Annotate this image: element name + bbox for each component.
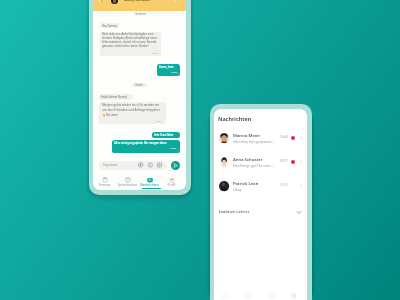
button[interactable]: SK [161,174,184,189]
button[interactable]: Inaktive Lehrer [214,204,307,220]
staticText: Gerne, kein [159,65,179,69]
staticText: Hallo kleiner Bonny! [101,95,132,99]
button[interactable]: Patrick Leon [214,175,307,198]
staticText: 21:32 [162,71,177,74]
button[interactable]: Marina Meier [214,127,307,150]
button[interactable]: Bonny Schneider [111,0,166,5]
staticText: Sag etwas [103,163,133,167]
staticText: Heute [132,83,146,87]
staticText: 09:17 [280,159,292,163]
staticText: 10:44 [280,135,292,139]
staticText: Anna Schuster [233,157,283,163]
staticText: Marina Meier [233,133,283,139]
staticText: 21:26 [143,52,158,55]
staticText: Sehr Dank Meer [154,133,179,137]
staticText: SK [166,178,178,181]
staticText: Das klingt gut! So moc... [233,163,281,168]
staticText: Alles wird gut geplant. Bis morgen dann [114,141,178,145]
staticText: Bonny Schneider [124,0,179,2]
staticText: 21:50 [161,147,176,150]
staticText: Termine [93,183,116,187]
staticText: Okay [233,187,281,192]
button[interactable]: Termine [94,174,117,189]
button[interactable]: More options [173,0,179,3]
button[interactable]: Back [99,0,105,3]
button[interactable]: Anna Schuster [214,151,307,174]
staticText: Hey Tommy [102,24,119,28]
staticText: Morgen gehts wieder los 😊 Es werden wir … [102,103,164,117]
button[interactable]: Send [171,161,180,170]
staticText: 10:24 [147,120,162,123]
button[interactable]: Sprechzeiten [117,174,140,189]
staticText: Nachrichten [138,183,161,187]
staticText: Sprechzeiten [116,183,139,187]
button[interactable]: Nachrichten [139,174,162,189]
staticText: alles klar, bin gespannt... [233,139,281,144]
staticText: Patrick Leon [233,181,283,187]
staticText: Profil [160,183,183,187]
staticText: Inaktive Lehrer [219,209,312,215]
staticText: Bitte lade von Arda Schulaufgabe vom let… [102,32,158,48]
staticText: Nachrichten [218,115,400,122]
staticText: Gestern [132,12,149,16]
staticText: 12:11 [280,183,292,187]
button[interactable]: Sag etwas [99,161,167,170]
